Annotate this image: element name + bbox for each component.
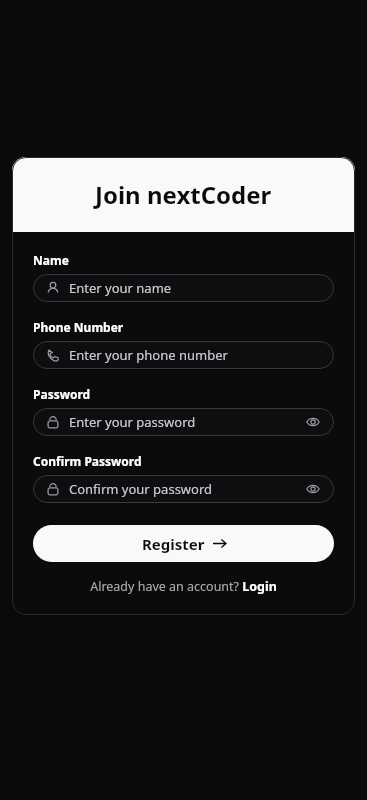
staticText: Enter your name (69, 279, 172, 297)
button[interactable]: Already have an account? Login (33, 578, 334, 595)
staticText: Enter your phone number (69, 346, 228, 364)
button[interactable]: Show password (305, 414, 321, 430)
button[interactable]: Enter your password (33, 408, 334, 436)
button[interactable]: Enter your phone number (33, 341, 334, 369)
staticText: Register (142, 534, 205, 554)
button[interactable]: Show password (305, 481, 321, 497)
staticText: Join nextCoder (95, 178, 272, 211)
staticText: Name (33, 252, 69, 268)
staticText: Password (33, 386, 91, 402)
button[interactable]: Enter your name (33, 274, 334, 302)
button[interactable]: Register (33, 525, 334, 562)
staticText: Confirm your password (69, 480, 213, 498)
staticText: Already have an account? Login (90, 578, 277, 595)
staticText: Confirm Password (33, 453, 142, 469)
staticText: Enter your password (69, 413, 196, 431)
button[interactable]: Confirm your password (33, 475, 334, 503)
staticText: Phone Number (33, 319, 124, 335)
